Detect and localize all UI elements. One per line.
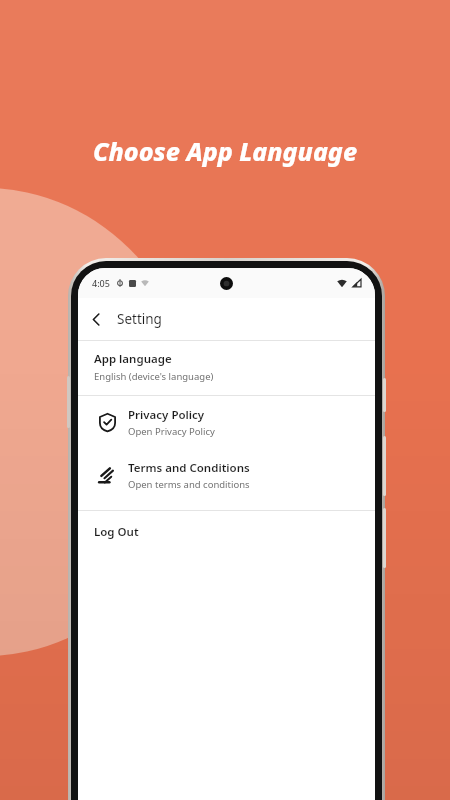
staticText: Open terms and conditions: [128, 478, 250, 491]
staticText: Privacy Policy: [128, 407, 205, 423]
staticText: Log Out: [94, 524, 139, 540]
staticText: 4:05: [92, 277, 110, 289]
button[interactable]: App language: [78, 341, 375, 395]
button[interactable]: Privacy Policy: [78, 396, 375, 449]
staticText: App language: [94, 351, 172, 367]
staticText: Open Privacy Policy: [128, 425, 215, 438]
button[interactable]: Terms and Conditions: [78, 449, 375, 502]
button[interactable]: Log Out: [78, 511, 375, 556]
staticText: Setting: [117, 310, 162, 328]
staticText: Choose App Language: [93, 134, 358, 168]
staticText: Terms and Conditions: [128, 460, 250, 476]
staticText: English (device's language): [94, 370, 214, 383]
button[interactable]: Back: [78, 301, 114, 337]
